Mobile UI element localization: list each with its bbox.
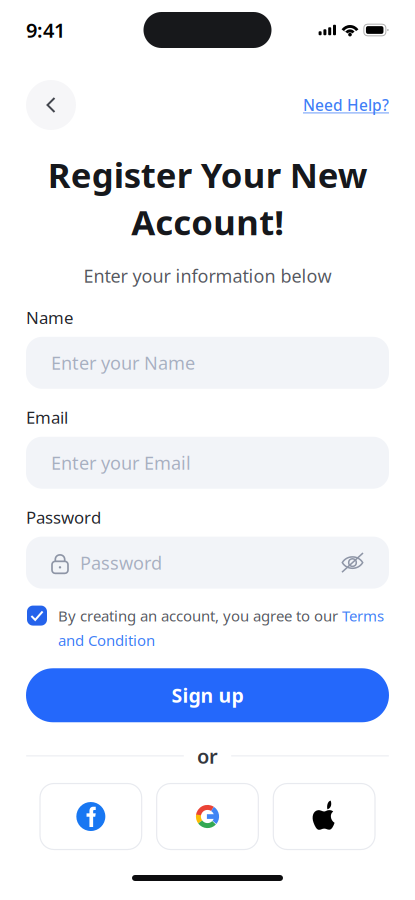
button[interactable]: Sign up with Google [157,783,258,849]
staticText: Email [26,406,68,429]
staticText: By creating an account, you agree to our [58,606,338,626]
staticText: Enter your Email [51,450,191,475]
button[interactable]: Agree to terms and conditions [27,606,47,626]
button[interactable]: Back [26,80,76,130]
staticText: and Condition [58,630,155,650]
staticText: Register Your New Account! [47,151,367,245]
staticText: Password [26,506,101,529]
button[interactable]: Sign up with Facebook [40,783,142,849]
staticText: 9:41 [26,16,65,44]
button[interactable]: Show password [341,552,364,574]
staticText: Enter your information below [83,263,331,288]
staticText: Sign up [171,682,243,708]
button[interactable]: Sign up with Apple [273,783,375,849]
staticText: Enter your Name [51,350,195,375]
staticText: Name [26,306,73,329]
staticText: Password [80,550,162,575]
button[interactable]: Sign up [26,668,389,722]
button[interactable]: and Condition [58,630,155,650]
staticText: Terms [338,606,384,626]
button[interactable]: Terms [338,606,384,626]
staticText: Need Help? [303,94,389,116]
staticText: or [197,742,218,769]
button[interactable]: Need Help? [303,94,389,116]
